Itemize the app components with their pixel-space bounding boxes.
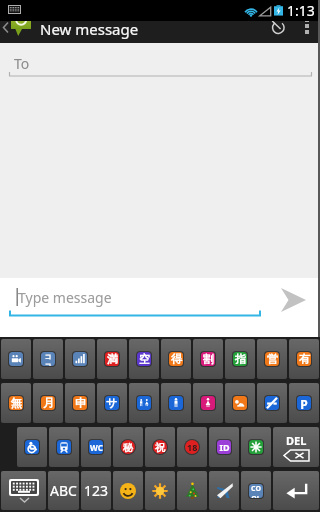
button[interactable]: Free of charge	[1, 383, 31, 423]
staticText: 満	[107, 352, 118, 366]
staticText: サ	[106, 396, 118, 410]
button[interactable]: Attach	[262, 21, 294, 43]
button[interactable]: Parking	[289, 383, 319, 423]
button[interactable]: Full	[97, 339, 127, 379]
button[interactable]: Christmas tree	[177, 471, 207, 510]
button[interactable]: Sun	[145, 471, 175, 510]
staticText: 営	[267, 352, 278, 366]
button[interactable]: Send	[268, 278, 318, 322]
button[interactable]: Delete	[273, 427, 319, 467]
staticText: 18	[187, 441, 198, 453]
button[interactable]: Congratulations	[145, 427, 175, 467]
button[interactable]: Open	[257, 339, 287, 379]
button[interactable]: Video camera	[1, 339, 31, 379]
staticText: 秘	[123, 441, 133, 454]
button[interactable]: Here	[33, 339, 63, 379]
staticText: 祝	[155, 441, 165, 454]
staticText: 無	[11, 396, 22, 410]
staticText: COOL	[249, 484, 263, 498]
button[interactable]: Has	[289, 339, 319, 379]
button[interactable]: Wheelchair	[17, 427, 47, 467]
staticText: 月	[43, 396, 54, 410]
staticText: 指	[235, 352, 246, 366]
button[interactable]: No entry	[257, 383, 287, 423]
button[interactable]: Metro	[49, 427, 79, 467]
button[interactable]: Vacancy	[129, 339, 159, 379]
staticText: 申	[75, 396, 86, 410]
button[interactable]: Water closet	[81, 427, 111, 467]
button[interactable]: No one under 18	[177, 427, 207, 467]
staticText: DEL	[286, 433, 307, 448]
staticText: WC	[90, 442, 103, 453]
button[interactable]: Secret	[113, 427, 143, 467]
button[interactable]: Eight spoked asterisk	[241, 427, 271, 467]
button[interactable]: Signal	[65, 339, 95, 379]
staticText: 123	[84, 481, 109, 500]
button[interactable]: Mens room	[161, 383, 191, 423]
staticText: 1:13	[287, 1, 315, 20]
button[interactable]: Enter	[273, 471, 319, 510]
button[interactable]: Womens room	[193, 383, 223, 423]
button[interactable]: Navigate up	[0, 21, 38, 43]
staticText: 空	[139, 352, 150, 366]
button[interactable]: To	[0, 43, 320, 81]
button[interactable]: Discount	[193, 339, 223, 379]
button[interactable]: ABC	[48, 471, 79, 510]
button[interactable]: Monthly	[33, 383, 63, 423]
button[interactable]: Reserved	[225, 339, 255, 379]
button[interactable]: Service	[97, 383, 127, 423]
staticText: 得	[171, 352, 182, 366]
button[interactable]: Type message	[2, 280, 267, 318]
button[interactable]: Cool	[241, 471, 271, 510]
staticText: New message	[40, 19, 139, 39]
button[interactable]: More options	[294, 21, 320, 43]
button[interactable]: Bargain	[161, 339, 191, 379]
button[interactable]: 123	[81, 471, 111, 510]
staticText: P	[300, 396, 308, 410]
button[interactable]: Airplane	[209, 471, 239, 510]
staticText: Type message	[18, 288, 112, 307]
button[interactable]: Restroom	[129, 383, 159, 423]
button[interactable]: Identification	[209, 427, 239, 467]
button[interactable]: Baby symbol	[225, 383, 255, 423]
staticText: ココ	[41, 352, 55, 366]
button[interactable]: Application	[65, 383, 95, 423]
staticText: ID	[219, 441, 230, 453]
staticText: ABC	[50, 481, 77, 500]
staticText: 割	[203, 352, 214, 366]
button[interactable]: Smiley	[113, 471, 143, 510]
button[interactable]: Hide keyboard	[1, 471, 46, 510]
staticText: To	[14, 54, 30, 73]
staticText: 有	[299, 352, 310, 366]
